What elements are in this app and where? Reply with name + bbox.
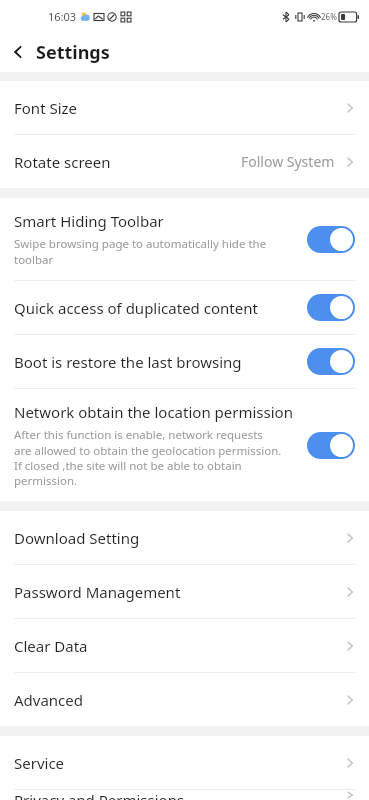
staticText: Download Setting bbox=[14, 528, 140, 548]
button[interactable]: Boot is restore the last browsing bbox=[0, 335, 369, 388]
button[interactable]: Clear Data bbox=[0, 619, 369, 672]
staticText: Network obtain the location permission bbox=[14, 402, 293, 422]
button[interactable]: Back bbox=[0, 34, 36, 70]
button[interactable]: Font Size bbox=[0, 81, 369, 134]
button[interactable]: Toggle bbox=[307, 432, 355, 459]
staticText: Smart Hiding Toolbar bbox=[14, 211, 164, 231]
button[interactable]: Network obtain the location permission bbox=[0, 389, 369, 501]
staticText: Follow System bbox=[241, 152, 335, 171]
staticText: Settings bbox=[36, 40, 110, 65]
button[interactable]: Toggle bbox=[307, 348, 355, 375]
staticText: After this function is enable, network r… bbox=[14, 427, 282, 488]
button[interactable]: Toggle bbox=[307, 226, 355, 253]
button[interactable]: Download Setting bbox=[0, 511, 369, 564]
button[interactable]: Advanced bbox=[0, 673, 369, 726]
staticText: 26% bbox=[321, 11, 337, 22]
staticText: Rotate screen bbox=[14, 152, 111, 172]
button[interactable]: Service bbox=[0, 736, 369, 789]
button[interactable]: Rotate screen bbox=[0, 135, 369, 188]
button[interactable]: Toggle bbox=[307, 294, 355, 321]
staticText: Clear Data bbox=[14, 636, 88, 656]
button[interactable]: Privacy and Permissions bbox=[0, 790, 369, 800]
staticText: Advanced bbox=[14, 690, 84, 710]
staticText: Service bbox=[14, 753, 65, 773]
staticText: 16:03 bbox=[48, 9, 77, 24]
button[interactable]: Quick access of duplicated content bbox=[0, 281, 369, 334]
button[interactable]: Smart Hiding Toolbar bbox=[0, 198, 369, 280]
staticText: Boot is restore the last browsing bbox=[14, 352, 242, 372]
staticText: Privacy and Permissions bbox=[14, 790, 185, 800]
staticText: Quick access of duplicated content bbox=[14, 298, 258, 318]
button[interactable]: Password Management bbox=[0, 565, 369, 618]
staticText: Font Size bbox=[14, 98, 78, 118]
staticText: Swipe browsing page to automatically hid… bbox=[14, 236, 301, 267]
staticText: Password Management bbox=[14, 582, 181, 602]
